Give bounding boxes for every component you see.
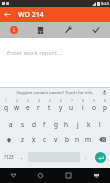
staticText: 4 (38, 99, 40, 103)
button[interactable]: 2 (11, 97, 22, 114)
staticText: f (43, 120, 46, 129)
button[interactable]: n (72, 131, 83, 148)
button[interactable]: 8 (77, 97, 88, 114)
staticText: g (54, 120, 58, 129)
button[interactable]: Enter (95, 152, 106, 163)
staticText: p (103, 103, 107, 112)
staticText: 7 (71, 99, 73, 103)
button[interactable]: Recent apps (54, 168, 82, 183)
staticText: t (48, 103, 51, 112)
staticText: b (65, 135, 69, 144)
staticText: 5 (49, 99, 51, 103)
button[interactable]: b (61, 131, 72, 148)
button[interactable]: c (39, 131, 50, 148)
button[interactable]: Suggest contact names? Touch for info. (0, 88, 110, 97)
button[interactable]: 9 (88, 97, 99, 114)
staticText: h (64, 120, 69, 129)
staticText: u (69, 103, 74, 112)
button[interactable]: x (28, 131, 39, 148)
staticText: r (37, 103, 40, 112)
button[interactable]: g (50, 114, 61, 131)
button[interactable]: Backspace (94, 131, 110, 148)
staticText: 9 (93, 99, 95, 103)
button[interactable]: 0 (99, 97, 110, 114)
staticText: . (85, 153, 87, 161)
button[interactable]: Complete (82, 22, 110, 38)
button[interactable]: Back (0, 168, 27, 183)
button[interactable]: k (83, 114, 94, 131)
button[interactable]: Parts (54, 22, 82, 38)
staticText: n (75, 135, 80, 144)
staticText: WO 214 (18, 10, 44, 20)
button[interactable]: f (39, 114, 50, 131)
staticText: w (14, 103, 20, 112)
staticText: , (21, 153, 23, 161)
staticText: a (9, 120, 13, 129)
staticText: j (77, 120, 79, 129)
button[interactable]: 1 (0, 97, 11, 114)
button[interactable]: s (17, 114, 28, 131)
button[interactable]: Attachments (27, 22, 54, 38)
staticText: k (87, 120, 91, 129)
staticText: 3 (27, 99, 29, 103)
button[interactable]: 3 (22, 97, 33, 114)
button[interactable]: j (72, 114, 83, 131)
staticText: m (85, 135, 92, 144)
staticText: q (4, 103, 8, 112)
staticText: ?123 (4, 154, 14, 160)
staticText: Enter work report... (7, 49, 62, 57)
staticText: 0 (104, 99, 106, 103)
button[interactable]: Voice input (101, 89, 108, 96)
staticText: 8 (82, 99, 84, 103)
staticText: s (21, 120, 25, 129)
staticText: e (26, 103, 30, 112)
button[interactable]: z (17, 131, 28, 148)
staticText: 1 (5, 99, 7, 103)
button[interactable]: Home (27, 168, 54, 183)
staticText: z (21, 135, 25, 144)
button[interactable]: Shift (0, 131, 17, 148)
staticText: 2 (16, 99, 18, 103)
button[interactable]: . (81, 148, 91, 166)
button[interactable]: d (28, 114, 39, 131)
button[interactable]: 6 (55, 97, 66, 114)
staticText: Suggest contact names? Touch for info. (16, 90, 94, 96)
staticText: i (82, 103, 84, 112)
button[interactable]: 4 (33, 97, 44, 114)
button[interactable]: Info (0, 22, 27, 38)
staticText: c (43, 135, 47, 144)
button[interactable]: Back (0, 7, 15, 22)
staticText: x (32, 135, 36, 144)
staticText: d (32, 120, 36, 129)
button[interactable]: 5 (44, 97, 55, 114)
button[interactable]: m (83, 131, 94, 148)
staticText: v (54, 135, 58, 144)
button[interactable]: Hide keyboard (82, 168, 110, 183)
staticText: y (59, 103, 63, 112)
staticText: 8:43 (101, 1, 109, 6)
button[interactable]: 7 (66, 97, 77, 114)
button[interactable]: h (61, 114, 72, 131)
staticText: l (99, 120, 101, 129)
button[interactable]: , (17, 148, 27, 166)
button[interactable]: l (94, 114, 105, 131)
staticText: 6 (60, 99, 62, 103)
button[interactable]: v (50, 131, 61, 148)
staticText: o (92, 103, 96, 112)
button[interactable]: a (5, 114, 17, 131)
button[interactable]: ?123 (0, 148, 17, 166)
